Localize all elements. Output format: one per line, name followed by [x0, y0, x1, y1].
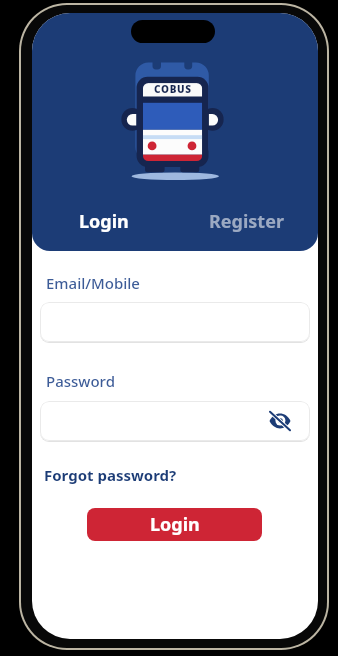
staticText: Register: [209, 209, 284, 234]
staticText: Email/Mobile: [46, 273, 140, 293]
button[interactable]: Show password: [267, 408, 293, 434]
staticText: Login: [150, 512, 200, 537]
staticText: COBUS: [154, 82, 192, 96]
staticText: Password: [46, 371, 115, 391]
button[interactable]: Register: [175, 203, 318, 239]
staticText: Login: [79, 209, 129, 234]
button[interactable]: [40, 302, 310, 342]
staticText: Forgot password?: [44, 465, 177, 485]
button[interactable]: Login: [87, 508, 262, 541]
button[interactable]: Show password: [40, 401, 310, 441]
button[interactable]: Login: [32, 203, 175, 239]
button[interactable]: Forgot password?: [44, 465, 177, 485]
